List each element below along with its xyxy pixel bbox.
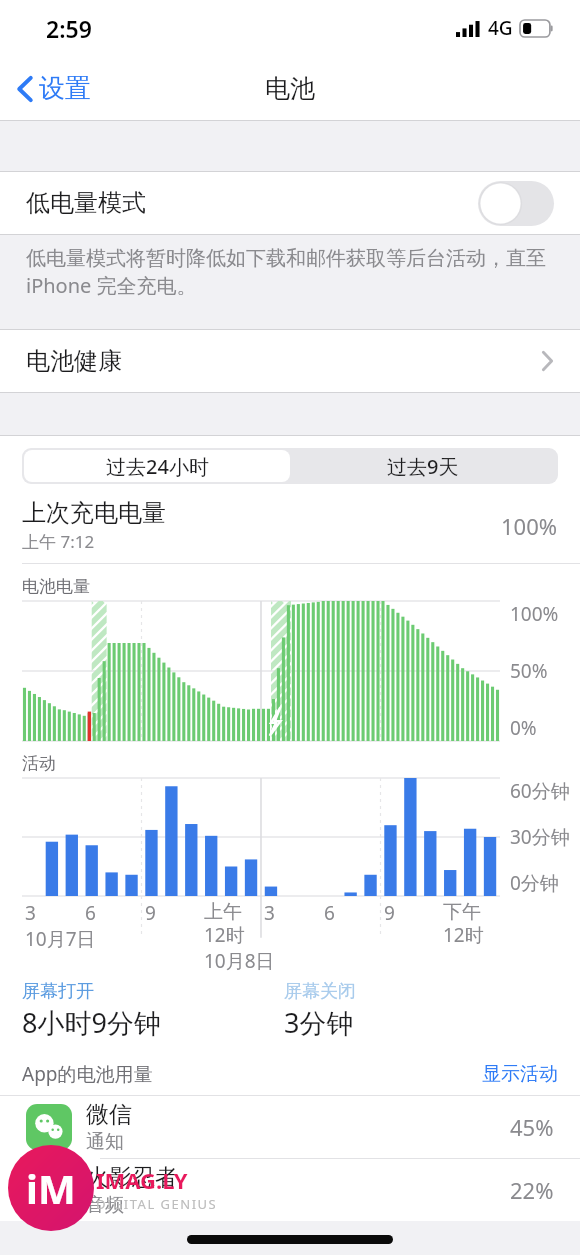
staticText: 8小时9分钟	[22, 1004, 161, 1041]
staticText: 9	[384, 900, 395, 926]
staticText: 活动	[22, 753, 56, 774]
button[interactable]: 火影忍者	[0, 1159, 580, 1221]
staticText: 22%	[510, 1175, 554, 1205]
staticText: 音频	[86, 1193, 124, 1217]
staticText: 3	[25, 900, 36, 926]
staticText: 3分钟	[284, 1004, 354, 1041]
staticText: 2:59	[46, 13, 92, 44]
staticText: 电池健康	[26, 346, 122, 376]
staticText: 60分钟	[510, 778, 570, 804]
staticText: 100%	[510, 601, 559, 627]
button[interactable]: 过去9天	[290, 450, 556, 482]
staticText: 电池	[265, 73, 315, 104]
staticText: 电池电量	[22, 576, 90, 597]
button[interactable]: 低电量模式	[0, 172, 580, 234]
staticText: 上次充电电量	[22, 498, 166, 528]
staticText: 45%	[510, 1112, 554, 1142]
staticText: 微信	[86, 1100, 132, 1129]
staticText: 过去9天	[387, 453, 459, 480]
staticText: iM	[26, 1161, 76, 1215]
staticText: 低电量模式将暂时降低如下载和邮件获取等后台活动，直至 iPhone 完全充电。	[26, 244, 554, 299]
staticText: 过去24小时	[106, 453, 209, 480]
staticText: 30分钟	[510, 824, 570, 850]
staticText: 10月7日	[25, 926, 96, 952]
staticText: 4G	[488, 15, 513, 41]
staticText: App的电池用量	[22, 1061, 153, 1087]
button[interactable]: 微信	[0, 1096, 580, 1158]
staticText: IMAG.LY	[96, 1165, 188, 1195]
staticText: 显示活动	[482, 1062, 558, 1086]
staticText: 50%	[510, 658, 548, 684]
staticText: 屏幕打开	[22, 980, 94, 1003]
staticText: 100%	[501, 511, 558, 541]
staticText: 设置	[39, 72, 91, 105]
staticText: 10月8日	[204, 948, 275, 974]
staticText: 9	[145, 900, 156, 926]
staticText: 屏幕关闭	[284, 980, 356, 1003]
button[interactable]: 显示活动	[482, 1062, 558, 1086]
button[interactable]: 低电量模式开关	[478, 181, 554, 226]
button[interactable]: 电池健康	[0, 330, 580, 392]
staticText: 通知	[86, 1130, 124, 1154]
staticText: 6	[324, 900, 335, 926]
button[interactable]: 过去24小时	[24, 450, 290, 482]
button[interactable]: 设置	[0, 66, 103, 111]
staticText: 上午 12时	[204, 900, 245, 948]
staticText: 低电量模式	[26, 188, 146, 218]
staticText: 火影忍者	[86, 1163, 178, 1192]
staticText: 上午 7:12	[22, 530, 95, 553]
staticText: 下午 12时	[443, 900, 484, 948]
staticText: 0%	[510, 715, 537, 741]
staticText: 3	[264, 900, 275, 926]
staticText: 0分钟	[510, 870, 559, 896]
staticText: 6	[85, 900, 96, 926]
staticText: DIGITAL GENIUS	[96, 1195, 218, 1213]
